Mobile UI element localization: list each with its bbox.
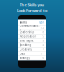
staticText: 12 xyxy=(40,26,44,30)
staticText: 4 xyxy=(42,43,44,47)
staticText: Negotiation xyxy=(20,35,37,38)
staticText: 9 xyxy=(42,39,44,42)
staticText: Data xyxy=(20,52,25,55)
staticText: 7 xyxy=(42,48,44,51)
staticText: 5 xyxy=(42,35,44,38)
staticText: Edit xyxy=(39,21,44,24)
staticText: The Skills you xyxy=(19,2,44,7)
staticText: Look Forward to xyxy=(17,8,47,13)
staticText: 11 xyxy=(40,52,44,55)
staticText: Skills xyxy=(20,21,27,24)
staticText: Time Mgmt xyxy=(20,39,34,42)
staticText: Creativity xyxy=(20,48,32,51)
staticText: Strategy xyxy=(20,56,30,60)
staticText: 6 xyxy=(42,56,44,60)
staticText: 8 xyxy=(42,30,44,34)
staticText: Speaking xyxy=(20,43,32,47)
staticText: Communication xyxy=(20,24,40,31)
staticText: Leadership xyxy=(20,30,35,34)
